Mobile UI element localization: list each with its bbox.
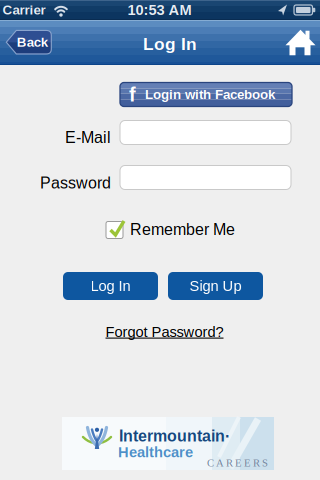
button[interactable]: Intermountain Healthcare Careers <box>62 417 274 470</box>
staticText: Log In <box>143 34 197 54</box>
staticText: f <box>129 83 136 106</box>
button[interactable]: f <box>120 82 292 106</box>
staticText: Intermountain· <box>119 427 230 445</box>
button[interactable]: Sign Up <box>168 272 263 300</box>
staticText: C A R E E R S <box>207 457 268 469</box>
staticText: Login with Facebook <box>145 87 275 102</box>
button[interactable]: Forgot Password? <box>105 324 223 340</box>
staticText: E-Mail <box>65 129 111 146</box>
staticText: Healthcare <box>118 444 193 460</box>
button[interactable]: Remember Me <box>106 218 236 240</box>
staticText: Sign Up <box>189 278 241 294</box>
staticText: Back <box>17 35 48 50</box>
button[interactable]: E-Mail <box>120 120 291 144</box>
staticText: Carrier <box>2 3 45 17</box>
button[interactable]: Back <box>5 29 52 55</box>
staticText: Password <box>40 174 111 192</box>
staticText: Remember Me <box>130 221 235 238</box>
staticText: 10:53 AM <box>127 2 191 18</box>
button[interactable]: Home <box>285 29 316 56</box>
staticText: Log In <box>90 278 130 294</box>
button[interactable]: Log In <box>63 272 158 300</box>
staticText: Forgot Password? <box>105 324 223 340</box>
button[interactable]: Password <box>120 165 291 189</box>
